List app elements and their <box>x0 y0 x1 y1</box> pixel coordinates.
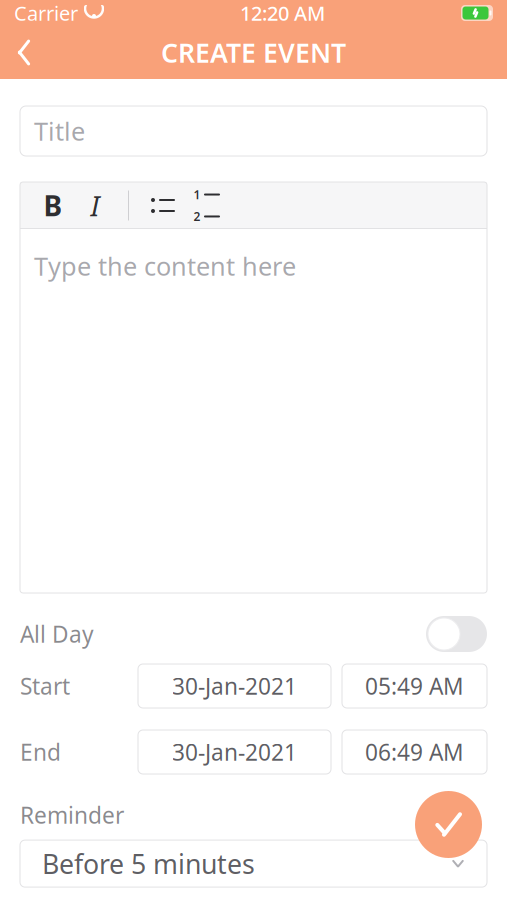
button[interactable]: Title <box>20 106 487 156</box>
button[interactable]: Bold <box>32 182 74 228</box>
button[interactable]: Before 5 minutes <box>20 840 487 887</box>
button[interactable]: All Day <box>426 616 487 652</box>
staticText: All Day <box>20 619 94 649</box>
staticText: I <box>90 187 99 224</box>
button[interactable]: 30-Jan-2021 <box>138 730 331 774</box>
staticText: Before 5 minutes <box>42 846 255 881</box>
staticText: Type the content here <box>34 249 296 283</box>
staticText: 30-Jan-2021 <box>172 671 297 701</box>
button[interactable]: Save event <box>415 791 482 858</box>
button[interactable]: Back <box>0 28 48 76</box>
button[interactable]: Numbered list <box>185 182 229 228</box>
staticText: End <box>20 737 61 767</box>
staticText: Carrier <box>14 0 78 26</box>
staticText: Reminder <box>20 800 124 830</box>
staticText: B <box>43 187 62 224</box>
staticText: 30-Jan-2021 <box>172 737 297 767</box>
button[interactable]: Bulleted list <box>141 182 185 228</box>
staticText: 05:49 AM <box>365 671 464 701</box>
staticText: 12:20 AM <box>240 0 325 26</box>
staticText: CREATE EVENT <box>161 35 346 70</box>
staticText: Start <box>20 671 70 701</box>
button[interactable]: 06:49 AM <box>342 730 487 774</box>
button[interactable]: Italic <box>74 182 116 228</box>
staticText: 1 <box>193 187 200 202</box>
staticText: Title <box>34 114 85 148</box>
button[interactable]: 30-Jan-2021 <box>138 664 331 708</box>
staticText: 2 <box>193 208 200 224</box>
staticText: 06:49 AM <box>365 737 464 767</box>
button[interactable]: 05:49 AM <box>342 664 487 708</box>
